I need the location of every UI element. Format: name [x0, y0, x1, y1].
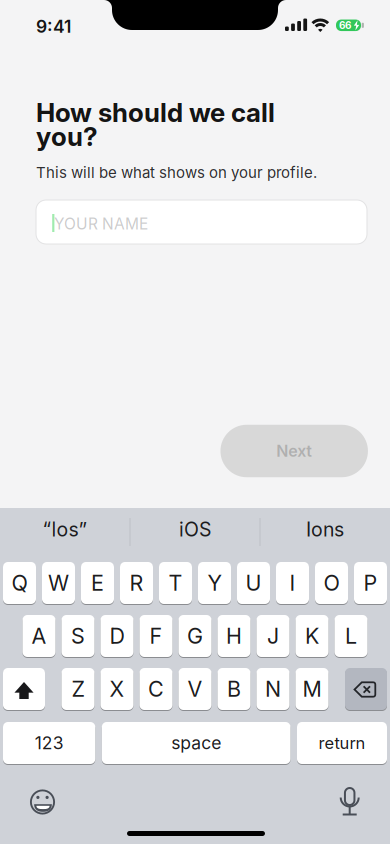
button[interactable]: B: [217, 668, 250, 710]
staticText: J: [267, 623, 279, 649]
button[interactable]: D: [100, 615, 133, 657]
staticText: E: [91, 570, 104, 596]
staticText: L: [345, 623, 357, 649]
button[interactable]: “los”: [1, 507, 129, 552]
button[interactable]: Ions: [261, 507, 389, 552]
button[interactable]: 123: [3, 722, 95, 764]
staticText: G: [187, 623, 203, 649]
staticText: R: [129, 570, 143, 596]
button[interactable]: H: [217, 615, 250, 657]
staticText: Y: [207, 570, 221, 596]
button[interactable]: Dictation: [328, 780, 372, 824]
button[interactable]: Emoji: [20, 780, 64, 824]
staticText: iOS: [179, 518, 211, 541]
staticText: How should we call: [36, 97, 275, 128]
staticText: O: [323, 570, 339, 596]
staticText: A: [31, 623, 46, 649]
button[interactable]: A: [22, 615, 55, 657]
button[interactable]: E: [81, 562, 114, 604]
staticText: H: [226, 623, 242, 649]
staticText: space: [171, 732, 221, 754]
button[interactable]: P: [354, 562, 387, 604]
staticText: I: [289, 570, 295, 596]
button[interactable]: G: [178, 615, 211, 657]
button[interactable]: I: [276, 562, 309, 604]
button[interactable]: V: [178, 668, 211, 710]
staticText: 123: [35, 732, 64, 754]
button[interactable]: C: [139, 668, 172, 710]
staticText: return: [318, 733, 365, 753]
staticText: Z: [71, 676, 84, 702]
staticText: F: [149, 623, 162, 649]
staticText: B: [227, 676, 241, 702]
button[interactable]: Z: [61, 668, 94, 710]
button[interactable]: U: [237, 562, 270, 604]
button[interactable]: N: [256, 668, 289, 710]
button[interactable]: Delete: [345, 668, 387, 710]
staticText: T: [168, 570, 182, 596]
button[interactable]: T: [159, 562, 192, 604]
staticText: Next: [276, 441, 312, 461]
staticText: Ions: [306, 518, 344, 541]
button[interactable]: F: [139, 615, 172, 657]
staticText: V: [187, 676, 202, 702]
staticText: 66: [339, 19, 351, 31]
button[interactable]: W: [42, 562, 75, 604]
button[interactable]: R: [120, 562, 153, 604]
button[interactable]: K: [295, 615, 328, 657]
button[interactable]: iOS: [131, 507, 259, 552]
button[interactable]: O: [315, 562, 348, 604]
staticText: S: [71, 623, 85, 649]
button[interactable]: Q: [3, 562, 36, 604]
staticText: This will be what shows on your profile.: [36, 163, 317, 182]
staticText: 9:41: [36, 16, 71, 37]
staticText: D: [109, 623, 124, 649]
staticText: Q: [11, 570, 27, 596]
button[interactable]: L: [334, 615, 367, 657]
staticText: P: [363, 570, 377, 596]
button[interactable]: M: [295, 668, 328, 710]
button[interactable]: J: [256, 615, 289, 657]
staticText: X: [109, 676, 124, 702]
staticText: K: [305, 623, 319, 649]
button[interactable]: X: [100, 668, 133, 710]
staticText: U: [245, 570, 261, 596]
staticText: M: [302, 676, 321, 702]
button[interactable]: space: [102, 722, 290, 764]
staticText: C: [148, 676, 164, 702]
button[interactable]: return: [297, 722, 387, 764]
button[interactable]: Y: [198, 562, 231, 604]
button[interactable]: Next: [220, 425, 368, 477]
staticText: N: [265, 676, 281, 702]
staticText: you?: [36, 121, 98, 152]
staticText: W: [48, 570, 69, 596]
staticText: YOUR NAME: [54, 214, 148, 233]
button[interactable]: S: [61, 615, 94, 657]
staticText: “los”: [42, 518, 87, 541]
button[interactable]: Shift: [3, 668, 45, 710]
